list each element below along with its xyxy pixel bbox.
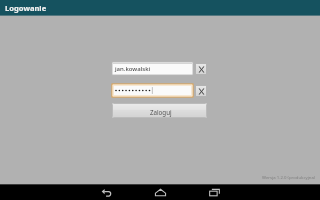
button[interactable]: Clear text [195, 63, 207, 75]
staticText: jan.kowalski [115, 65, 151, 73]
button[interactable]: Zaloguj [112, 103, 207, 118]
button[interactable]: Back [98, 184, 114, 200]
button[interactable]: Recent apps [206, 184, 222, 200]
button[interactable]: Clear text [195, 85, 207, 97]
button[interactable]: jan.kowalski [112, 62, 193, 75]
button[interactable] [112, 84, 193, 97]
staticText: Zaloguj [150, 108, 172, 116]
staticText: Wersja 1.2.0 (produkcyjna) [262, 174, 316, 180]
button[interactable]: Home [152, 184, 168, 200]
staticText: Logowanie [5, 3, 47, 13]
